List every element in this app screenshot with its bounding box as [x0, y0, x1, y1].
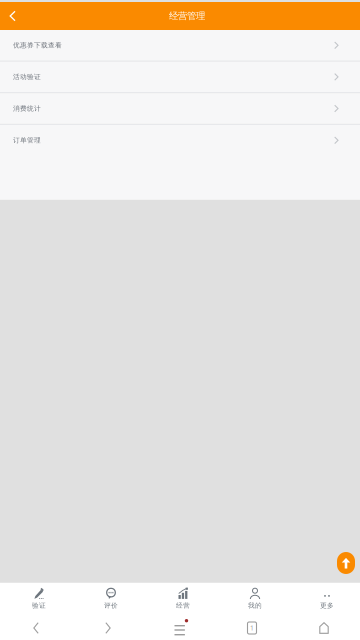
button[interactable]: 活动验证 — [0, 62, 360, 93]
button[interactable]: Back — [0, 622, 72, 634]
staticText: 更多 — [320, 601, 334, 610]
button[interactable]: Home — [288, 622, 360, 634]
button[interactable]: Forward — [72, 622, 144, 634]
button[interactable]: Menu — [144, 619, 216, 637]
button[interactable]: 经营 — [144, 581, 216, 618]
staticText: 评价 — [104, 601, 118, 610]
staticText: 订单管理 — [13, 136, 41, 144]
button[interactable]: 验证 — [0, 581, 72, 618]
staticText: 我的 — [248, 601, 262, 610]
button[interactable]: 消费统计 — [0, 93, 360, 125]
button[interactable]: Scroll to top — [337, 552, 355, 574]
staticText: 优惠券下载查看 — [13, 41, 62, 49]
staticText: 经营 — [176, 601, 190, 610]
staticText: 验证 — [32, 601, 46, 610]
button[interactable]: Back — [0, 2, 26, 30]
button[interactable]: 优惠券下载查看 — [0, 30, 360, 62]
button[interactable]: 订单管理 — [0, 125, 360, 156]
button[interactable]: 评价 — [72, 581, 144, 618]
staticText: 1 — [250, 624, 254, 632]
button[interactable]: 我的 — [216, 581, 288, 618]
staticText: 消费统计 — [13, 104, 41, 113]
button[interactable]: Tabs — [216, 622, 288, 634]
button[interactable]: 更多 — [288, 581, 360, 618]
staticText: 活动验证 — [13, 73, 41, 81]
staticText: 经营管理 — [169, 10, 205, 22]
